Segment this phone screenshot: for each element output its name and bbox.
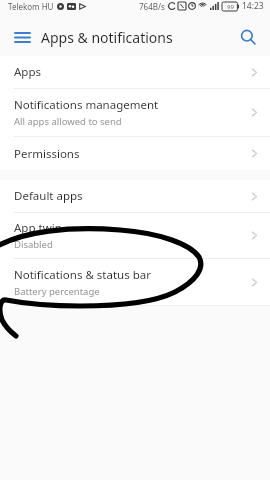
button[interactable]: App twin — [0, 213, 270, 258]
staticText: Battery percentage — [14, 285, 100, 298]
staticText: Apps — [14, 64, 42, 80]
button[interactable]: Permissions — [0, 137, 270, 170]
staticText: Disabled — [14, 238, 53, 251]
staticText: 764B/s — [139, 1, 165, 12]
button[interactable]: Notifications & status bar — [0, 259, 270, 305]
staticText: Default apps — [14, 188, 83, 204]
staticText: Notifications & status bar — [14, 267, 151, 283]
button[interactable]: Search — [232, 21, 264, 53]
staticText: App twin — [14, 220, 62, 236]
button[interactable]: Notifications management — [0, 89, 270, 136]
staticText: 99 — [227, 3, 234, 11]
staticText: Apps & notifications — [41, 28, 173, 47]
staticText: 14:23 — [242, 0, 264, 12]
staticText: Permissions — [14, 146, 80, 162]
button[interactable]: Menu — [6, 21, 38, 53]
staticText: All apps allowed to send — [14, 115, 122, 128]
staticText: Telekom HU — [8, 1, 54, 12]
button[interactable]: Apps — [0, 56, 270, 88]
button[interactable]: Default apps — [0, 180, 270, 212]
staticText: Notifications management — [14, 97, 159, 113]
